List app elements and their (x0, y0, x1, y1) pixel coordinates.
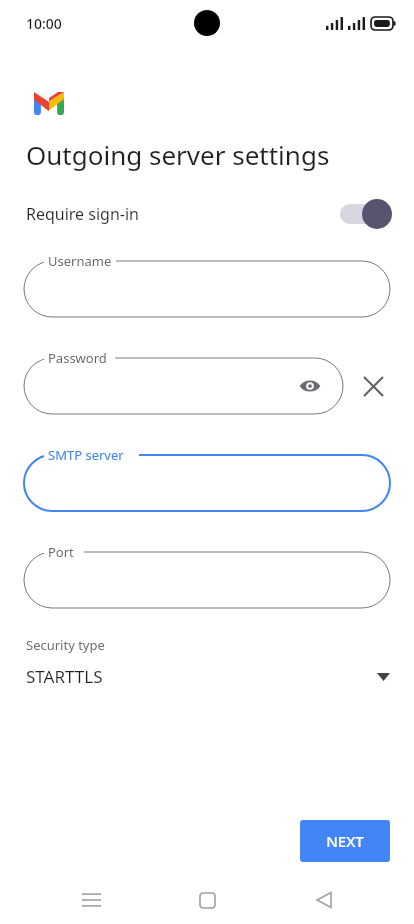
staticText: Security type (26, 636, 105, 654)
staticText: Require sign-in (26, 203, 139, 225)
button[interactable]: Require sign-in (0, 192, 414, 236)
button[interactable]: Port (24, 543, 390, 608)
button[interactable]: Home (181, 876, 233, 924)
button[interactable]: Security type (0, 636, 414, 688)
button[interactable]: Recent apps (65, 876, 117, 924)
button[interactable]: Require sign-in toggle (340, 199, 392, 229)
staticText: NEXT (326, 831, 364, 851)
staticText: Password (48, 349, 107, 367)
button[interactable]: Username (24, 252, 390, 317)
button[interactable]: Back (298, 876, 350, 924)
button[interactable]: SMTP server (24, 446, 390, 511)
staticText: Port (48, 543, 74, 561)
staticText: SMTP server (48, 446, 124, 464)
button[interactable]: Show password (293, 369, 327, 403)
button[interactable]: Password (24, 349, 343, 414)
staticText: Outgoing server settings (26, 137, 330, 172)
staticText: STARTTLS (26, 665, 103, 688)
staticText: Username (48, 252, 112, 270)
staticText: 10:00 (26, 14, 62, 33)
button[interactable]: Clear password (351, 364, 395, 408)
button[interactable]: NEXT (300, 820, 390, 862)
